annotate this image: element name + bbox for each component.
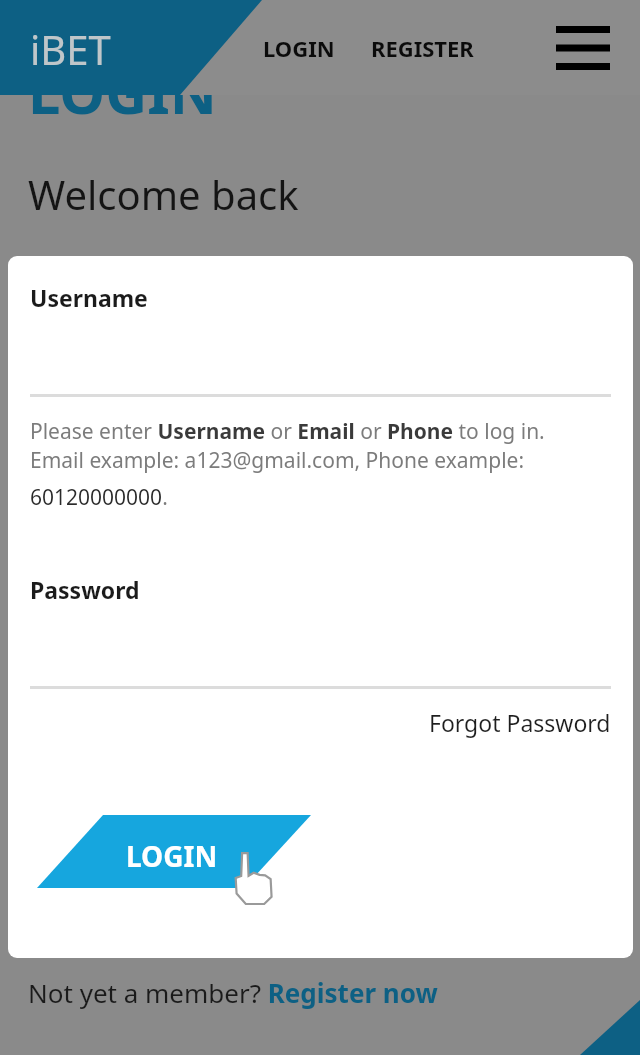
button[interactable]: LOGIN (8, 809, 633, 899)
staticText: LOGIN (126, 837, 218, 875)
button[interactable]: REGISTER (363, 23, 482, 73)
staticText: Please enter Username or Email or Phone … (30, 417, 545, 446)
button[interactable]: iBET (0, 20, 123, 76)
staticText: Not yet a member? Register now (28, 975, 438, 1010)
staticText: LOGIN (28, 52, 217, 131)
staticText: Username (30, 282, 148, 313)
staticText: REGISTER (371, 33, 474, 63)
button[interactable]: LOGIN (255, 23, 343, 73)
staticText: Welcome back (28, 167, 299, 221)
staticText: Email example: a123@gmail.com, Phone exa… (30, 446, 596, 511)
staticText: iBET (30, 22, 111, 76)
staticText: Forgot Password (429, 707, 611, 738)
button[interactable]: Menu (551, 20, 615, 76)
staticText: Password (30, 574, 140, 605)
button[interactable]: Forgot Password (407, 703, 633, 742)
button[interactable]: Not yet a member? Register now (28, 975, 438, 1010)
staticText: LOGIN (263, 33, 335, 63)
